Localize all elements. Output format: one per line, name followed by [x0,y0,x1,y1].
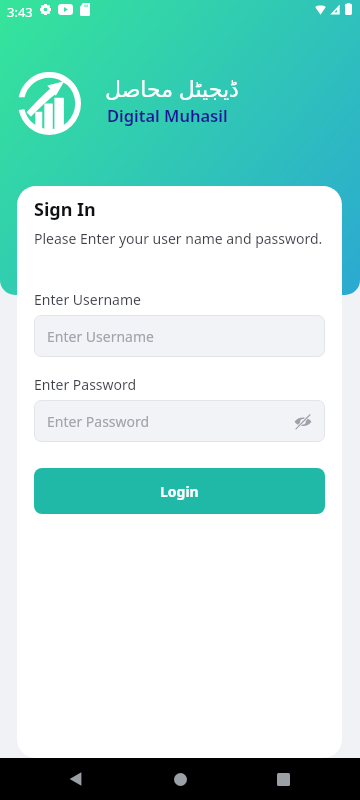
button[interactable]: Login [34,468,325,514]
button[interactable]: Recent apps [253,758,313,800]
staticText: ڈیجیٹل محاصل [105,73,239,103]
staticText: Enter Username [34,290,141,309]
staticText: Digital Muhasil [107,104,228,126]
button[interactable]: Enter Password [34,400,325,442]
button[interactable]: Enter Username [34,315,325,357]
staticText: Enter Password [34,375,137,394]
button[interactable]: Home [150,758,210,800]
staticText: Login [160,482,199,501]
staticText: Enter Password [47,412,150,431]
button[interactable]: Show password [291,409,315,433]
staticText: Enter Username [47,327,154,346]
staticText: Please Enter your user name and password… [34,229,323,248]
staticText: 3:43 [7,3,33,21]
button[interactable]: Back [45,758,105,800]
staticText: Sign In [34,197,96,222]
